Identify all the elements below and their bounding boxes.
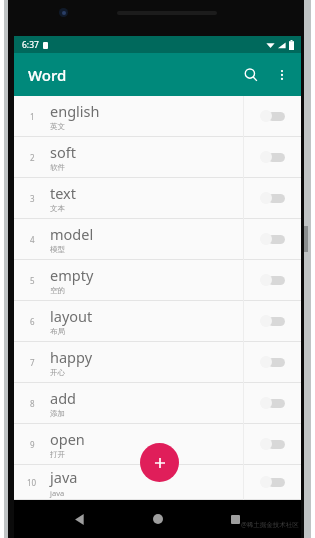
staticText: 英文 (50, 122, 65, 131)
staticText: empty (50, 265, 94, 285)
button[interactable]: Toggle word (259, 150, 285, 164)
staticText: 8 (30, 398, 35, 409)
staticText: 10 (27, 477, 37, 488)
button[interactable]: 5 (14, 260, 301, 301)
button[interactable]: 6 (14, 301, 301, 342)
button[interactable]: 2 (14, 137, 301, 178)
button[interactable]: Toggle word (259, 273, 285, 287)
staticText: open (50, 429, 85, 449)
button[interactable]: 4 (14, 219, 301, 260)
staticText: java (50, 488, 65, 498)
button[interactable]: 1 (14, 96, 301, 137)
staticText: 模型 (50, 245, 65, 254)
button[interactable]: More options (267, 60, 297, 90)
staticText: 7 (30, 357, 35, 368)
staticText: soft (50, 142, 76, 162)
staticText: java (50, 467, 78, 487)
button[interactable]: Add word (140, 443, 179, 482)
staticText: add (50, 388, 76, 408)
button[interactable]: Toggle word (259, 109, 285, 123)
staticText: layout (50, 306, 93, 326)
staticText: 4 (30, 234, 35, 245)
staticText: 开心 (50, 368, 65, 377)
staticText: 2 (30, 152, 35, 163)
button[interactable]: Toggle word (259, 475, 285, 489)
staticText: 文本 (50, 204, 65, 213)
button[interactable]: Back (69, 509, 89, 529)
staticText: happy (50, 347, 93, 367)
staticText: 1 (30, 111, 35, 122)
button[interactable]: 3 (14, 178, 301, 219)
button[interactable]: Toggle word (259, 355, 285, 369)
staticText: 6 (30, 316, 35, 327)
staticText: 6:37 (22, 39, 39, 51)
staticText: Word (28, 65, 67, 85)
button[interactable]: Toggle word (259, 191, 285, 205)
button[interactable]: Search (235, 59, 267, 91)
staticText: 布局 (50, 327, 65, 336)
button[interactable]: 7 (14, 342, 301, 383)
staticText: 打开 (50, 450, 65, 459)
button[interactable]: Toggle word (259, 314, 285, 328)
staticText: 5 (30, 275, 35, 286)
button[interactable]: Recent apps (225, 509, 245, 529)
staticText: model (50, 224, 94, 244)
staticText: 软件 (50, 163, 65, 172)
staticText: 添加 (50, 409, 65, 418)
button[interactable]: 8 (14, 383, 301, 424)
button[interactable]: 10 (14, 465, 301, 500)
button[interactable]: Toggle word (259, 232, 285, 246)
staticText: 3 (30, 193, 35, 204)
button[interactable]: 9 (14, 424, 301, 465)
button[interactable]: Toggle word (259, 437, 285, 451)
button[interactable]: Toggle word (259, 396, 285, 410)
button[interactable]: Home (148, 509, 168, 529)
staticText: 9 (30, 439, 35, 450)
staticText: text (50, 183, 77, 203)
staticText: english (50, 101, 100, 121)
staticText: 空的 (50, 286, 65, 295)
staticText: @稀土掘金技术社区 (241, 520, 299, 529)
